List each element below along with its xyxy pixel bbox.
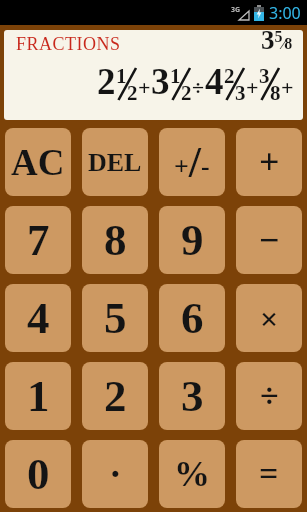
staticText: +/- bbox=[174, 138, 210, 187]
staticText: 1 bbox=[170, 64, 181, 87]
staticText: ÷ bbox=[192, 75, 205, 99]
staticText: 0 bbox=[27, 449, 50, 499]
staticText: 4 bbox=[205, 61, 224, 102]
staticText: 1 bbox=[116, 64, 127, 87]
button[interactable]: + bbox=[236, 128, 302, 196]
button[interactable]: · bbox=[82, 440, 148, 508]
staticText: 2 bbox=[181, 81, 192, 104]
staticText: 2 bbox=[104, 371, 127, 421]
staticText: 2 bbox=[127, 81, 138, 104]
button[interactable]: ÷ bbox=[236, 362, 302, 430]
button[interactable]: +/- bbox=[159, 128, 225, 196]
staticText: 5 bbox=[104, 293, 127, 343]
staticText: + bbox=[259, 142, 280, 182]
staticText: 3 bbox=[181, 371, 204, 421]
staticText: % bbox=[174, 454, 210, 494]
staticText: 35⁄8 bbox=[261, 30, 293, 55]
button[interactable]: 1 bbox=[5, 362, 71, 430]
staticText: 4 bbox=[27, 293, 50, 343]
button[interactable]: 7 bbox=[5, 206, 71, 274]
staticText: 8 bbox=[270, 81, 281, 104]
staticText: FRACTIONS bbox=[16, 34, 121, 54]
staticText: 2 bbox=[97, 61, 116, 102]
staticText: − bbox=[259, 220, 280, 260]
staticText: 3:00 bbox=[269, 2, 301, 24]
staticText: 2 bbox=[224, 64, 235, 87]
button[interactable]: 4 bbox=[5, 284, 71, 352]
staticText: AC bbox=[11, 142, 65, 183]
staticText: 1 bbox=[27, 371, 50, 421]
staticText: 9 bbox=[181, 215, 204, 265]
staticText: 3 bbox=[259, 64, 270, 87]
staticText: 3G bbox=[231, 5, 241, 15]
staticText: 6 bbox=[181, 293, 204, 343]
staticText: · bbox=[109, 453, 122, 495]
button[interactable]: DEL bbox=[82, 128, 148, 196]
staticText: DEL bbox=[88, 148, 142, 177]
button[interactable]: AC bbox=[5, 128, 71, 196]
button[interactable]: 5 bbox=[82, 284, 148, 352]
button[interactable]: × bbox=[236, 284, 302, 352]
staticText: + bbox=[281, 75, 294, 99]
staticText: + bbox=[246, 75, 259, 99]
button[interactable]: % bbox=[159, 440, 225, 508]
staticText: 7 bbox=[27, 215, 50, 265]
button[interactable]: 3 bbox=[159, 362, 225, 430]
staticText: + bbox=[138, 75, 151, 99]
staticText: × bbox=[260, 301, 279, 336]
button[interactable]: 8 bbox=[82, 206, 148, 274]
staticText: 8 bbox=[104, 215, 127, 265]
staticText: ÷ bbox=[260, 377, 279, 415]
staticText: = bbox=[259, 455, 279, 493]
button[interactable]: 9 bbox=[159, 206, 225, 274]
button[interactable]: 6 bbox=[159, 284, 225, 352]
button[interactable]: 2 bbox=[82, 362, 148, 430]
staticText: 3 bbox=[235, 81, 246, 104]
button[interactable]: 0 bbox=[5, 440, 71, 508]
button[interactable]: = bbox=[236, 440, 302, 508]
staticText: 3 bbox=[151, 61, 170, 102]
button[interactable]: − bbox=[236, 206, 302, 274]
